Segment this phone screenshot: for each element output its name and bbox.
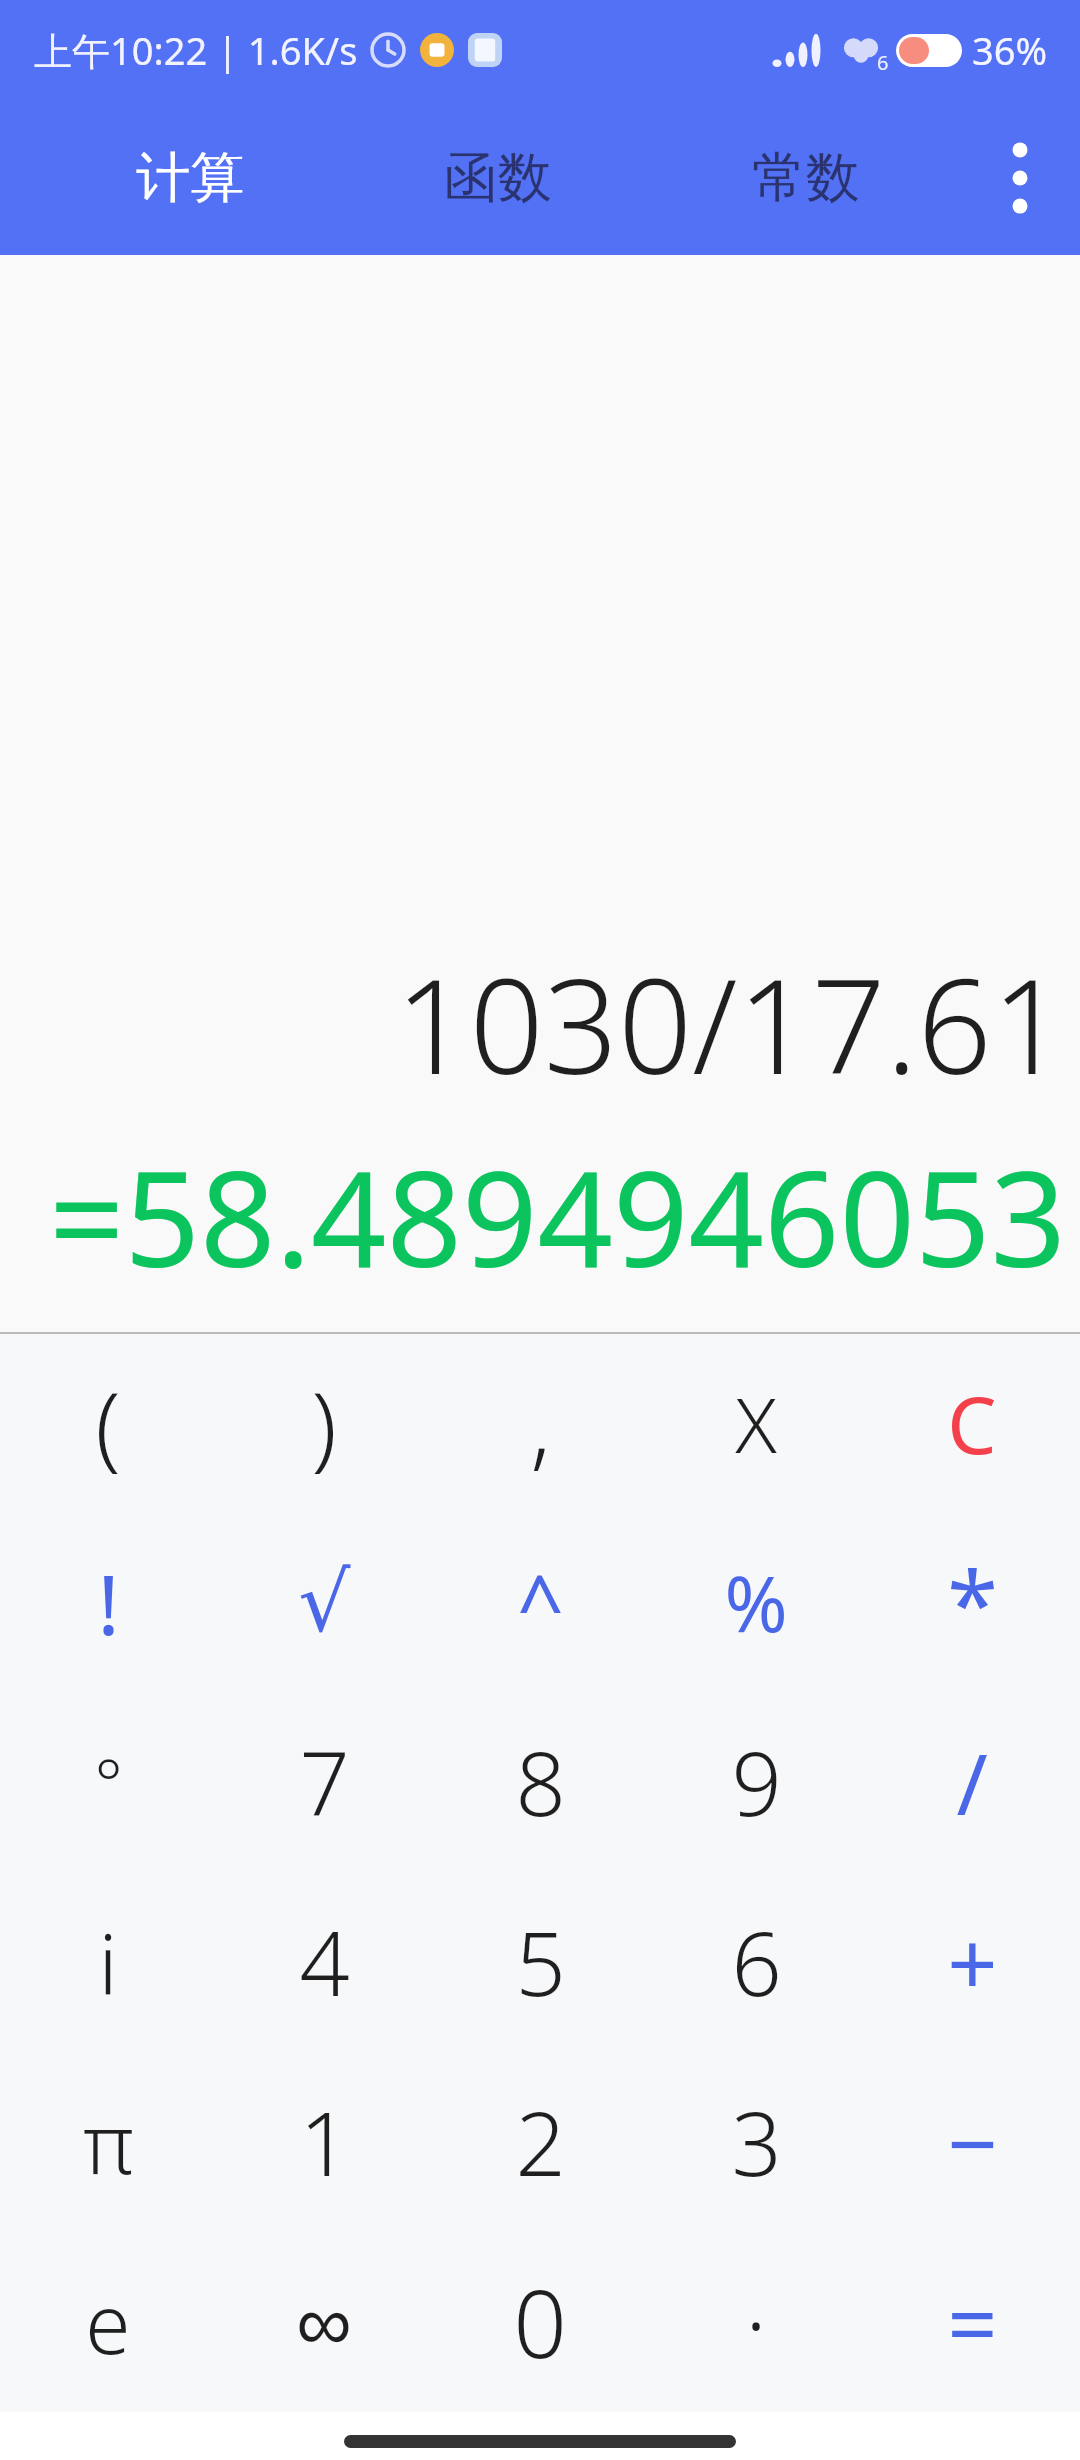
button[interactable]: , [432, 1334, 648, 1513]
button[interactable]: 函数 [344, 100, 652, 255]
button[interactable]: 9 [648, 1692, 864, 1872]
staticText: ^ [517, 1547, 564, 1659]
staticText: , [530, 1361, 551, 1486]
button[interactable]: ! [0, 1513, 216, 1692]
staticText: ∞ [296, 2279, 352, 2366]
staticText: 2 [515, 2082, 566, 2202]
staticText: e [85, 2266, 131, 2378]
button[interactable]: − [864, 2052, 1080, 2232]
button[interactable]: 0 [432, 2232, 648, 2412]
staticText: 9 [731, 1722, 782, 1842]
staticText: ( [95, 1361, 121, 1486]
button[interactable]: * [864, 1513, 1080, 1692]
staticText: i [98, 1906, 118, 2018]
button[interactable]: 7 [216, 1692, 432, 1872]
button[interactable]: 常数 [652, 100, 960, 255]
staticText: X [735, 1372, 777, 1476]
button[interactable]: π [0, 2052, 216, 2232]
button[interactable]: + [864, 1872, 1080, 2052]
staticText: ! [97, 1547, 120, 1659]
staticText: − [947, 2082, 998, 2202]
staticText: 6 [731, 1902, 782, 2022]
staticText: 8 [515, 1722, 566, 1842]
button[interactable]: ( [0, 1334, 216, 1513]
button[interactable]: = [864, 2232, 1080, 2412]
button[interactable]: ∞ [216, 2232, 432, 2412]
staticText: √ [298, 1555, 351, 1650]
staticText: 0 [513, 2258, 567, 2386]
button[interactable]: 3 [648, 2052, 864, 2232]
staticText: C [947, 1371, 997, 1477]
button[interactable]: · [648, 2232, 864, 2412]
staticText: 36% [972, 24, 1048, 76]
staticText: 常数 [752, 144, 860, 212]
staticText: 计算 [136, 144, 244, 212]
button[interactable]: % [648, 1513, 864, 1692]
staticText: 3 [731, 2082, 782, 2202]
button[interactable]: ^ [432, 1513, 648, 1692]
button[interactable]: 5 [432, 1872, 648, 2052]
button[interactable]: More options [960, 100, 1080, 255]
button[interactable]: 1 [216, 2052, 432, 2232]
staticText: 5 [515, 1902, 566, 2022]
staticText: ° [94, 1737, 123, 1827]
staticText: 7 [299, 1722, 350, 1842]
staticText: + [947, 1902, 998, 2022]
staticText: % [724, 1551, 788, 1655]
button[interactable]: i [0, 1872, 216, 2052]
staticText: 1 [299, 2082, 350, 2202]
button[interactable]: 计算 [36, 100, 344, 255]
staticText: π [83, 2086, 134, 2198]
staticText: 上午10:22 | 1.6K/s [34, 24, 358, 76]
staticText: 6 [877, 49, 889, 76]
staticText: 函数 [444, 144, 552, 212]
staticText: = [947, 2262, 998, 2382]
button[interactable]: / [864, 1692, 1080, 1872]
button[interactable]: 2 [432, 2052, 648, 2232]
button[interactable]: 6 [648, 1872, 864, 2052]
staticText: · [745, 2262, 767, 2382]
button[interactable]: ) [216, 1334, 432, 1513]
button[interactable]: e [0, 2232, 216, 2412]
staticText: * [947, 1540, 998, 1665]
staticText: ) [311, 1361, 337, 1486]
staticText: =58.4894946053 [16, 1126, 1066, 1306]
staticText: / [956, 1725, 988, 1839]
button[interactable]: X [648, 1334, 864, 1513]
staticText: 1030/17.61 [16, 935, 1066, 1112]
button[interactable]: 4 [216, 1872, 432, 2052]
button[interactable]: ° [0, 1692, 216, 1872]
button[interactable]: 8 [432, 1692, 648, 1872]
button[interactable]: C [864, 1334, 1080, 1513]
button[interactable]: √ [216, 1513, 432, 1692]
staticText: 4 [299, 1902, 350, 2022]
